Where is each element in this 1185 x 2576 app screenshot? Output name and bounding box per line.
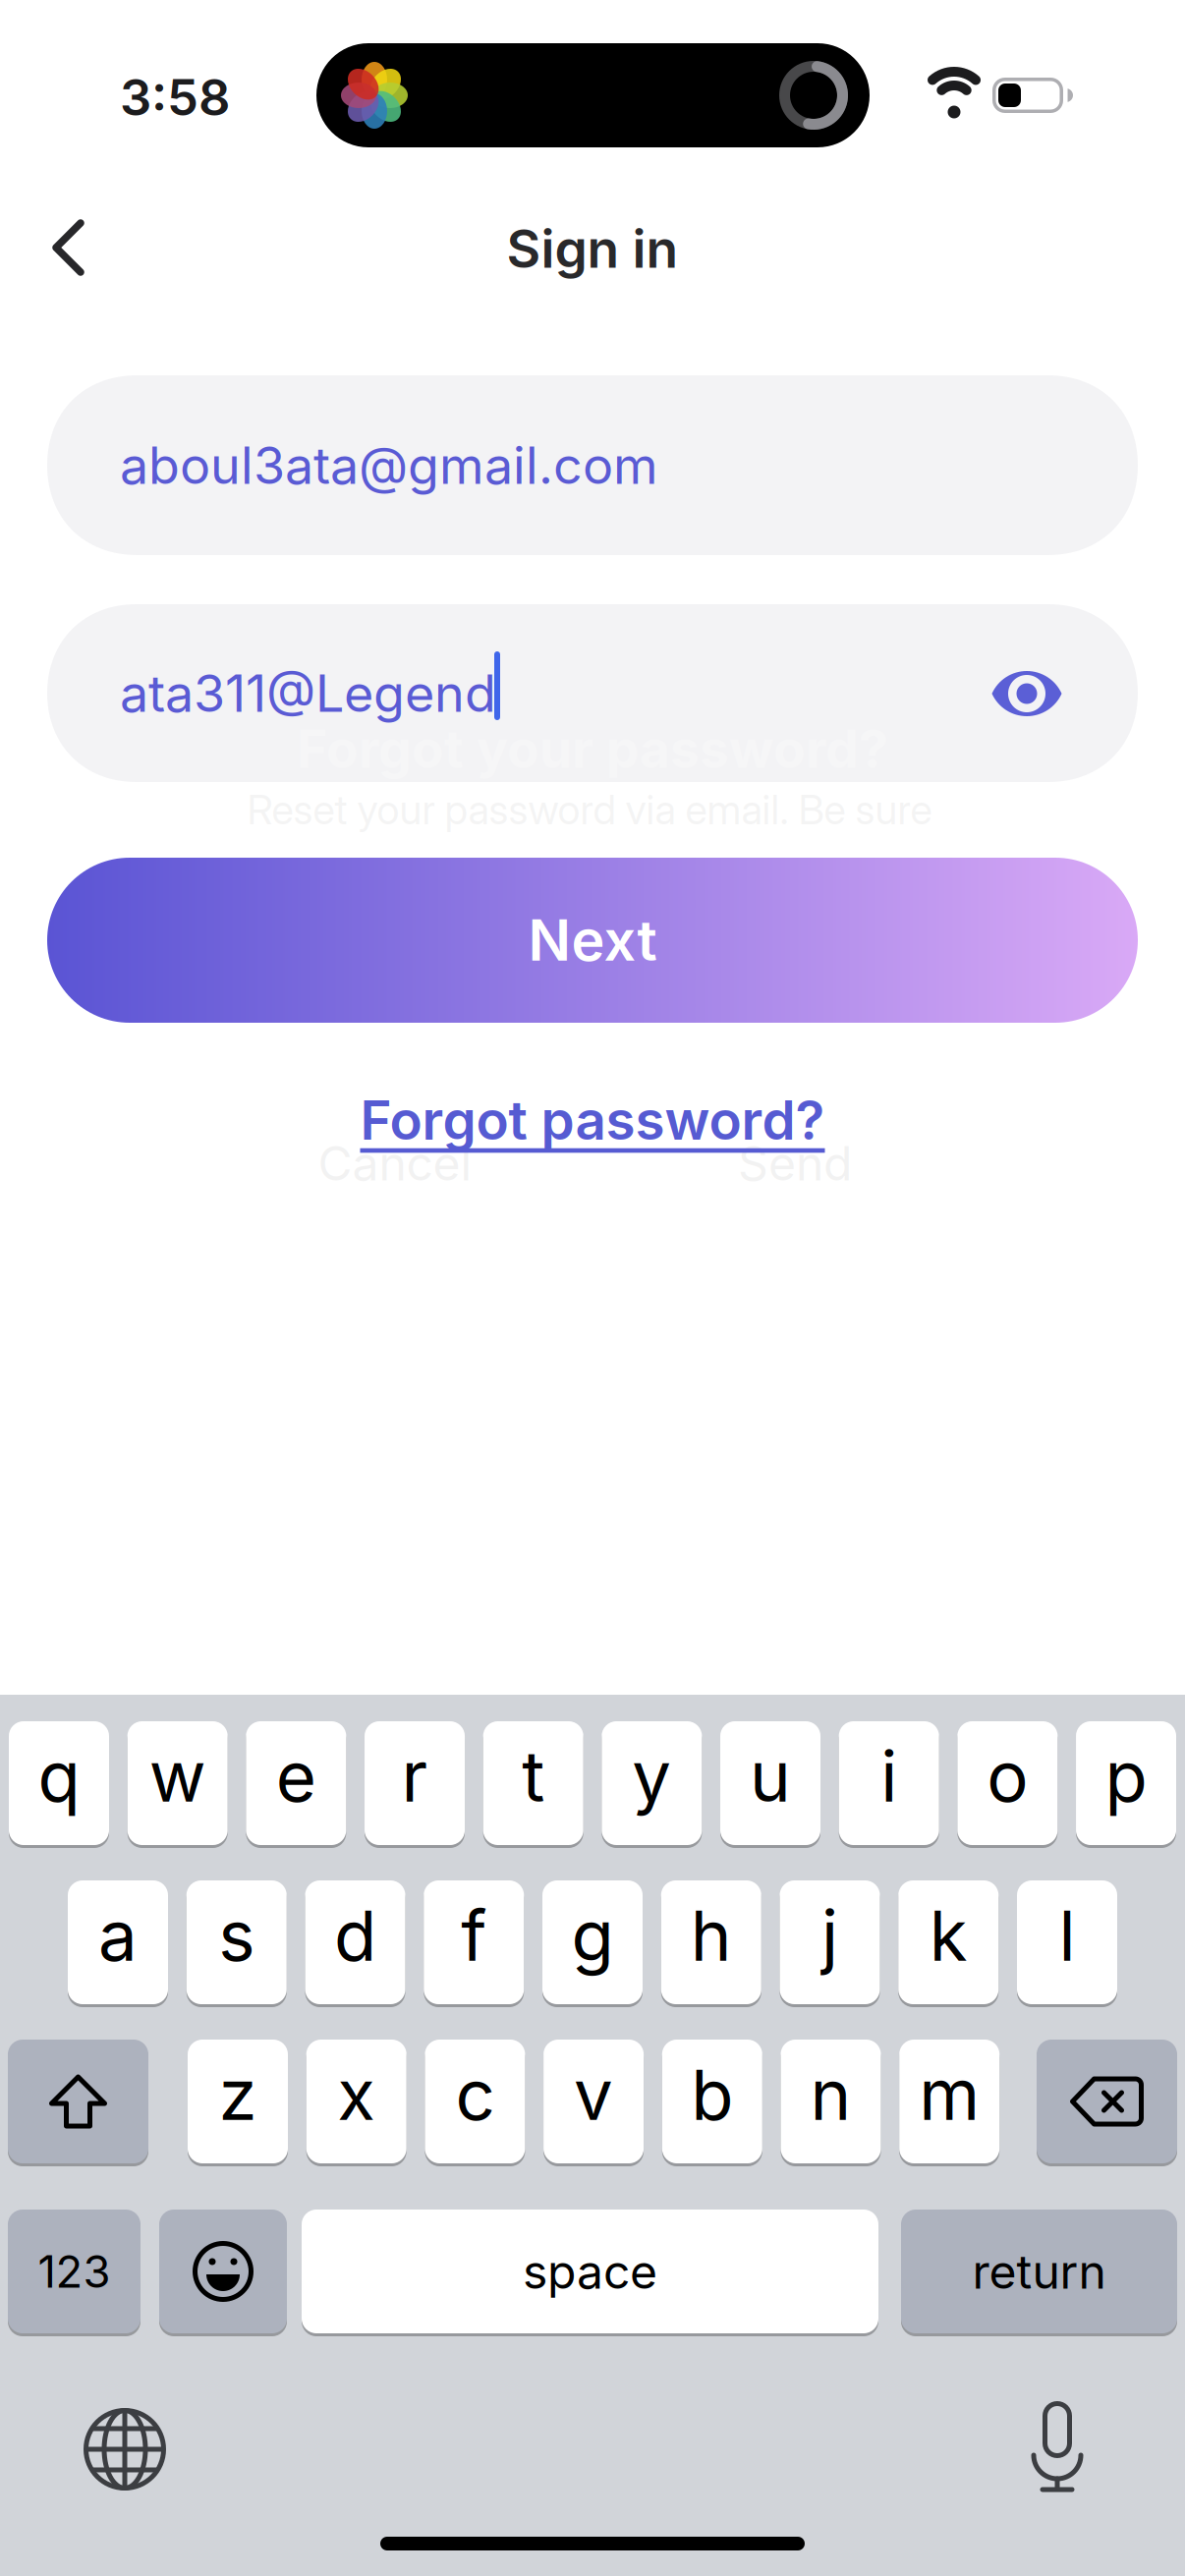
button[interactable]: b bbox=[662, 2038, 762, 2165]
button[interactable]: v bbox=[543, 2038, 644, 2165]
staticText: l bbox=[1059, 1894, 1075, 1976]
staticText: n bbox=[810, 2054, 851, 2136]
button[interactable]: Next bbox=[47, 858, 1138, 1023]
staticText: q bbox=[38, 1735, 80, 1817]
staticText: h bbox=[691, 1894, 732, 1976]
button[interactable]: space bbox=[302, 2208, 878, 2335]
staticText: s bbox=[218, 1894, 255, 1976]
staticText: c bbox=[455, 2054, 495, 2136]
staticText: t bbox=[522, 1735, 545, 1817]
staticText: Forgot password? bbox=[360, 1088, 825, 1152]
staticText: z bbox=[219, 2054, 257, 2136]
staticText: w bbox=[149, 1735, 206, 1817]
button[interactable]: w bbox=[127, 1720, 228, 1847]
staticText: b bbox=[691, 2054, 733, 2136]
staticText: g bbox=[571, 1894, 614, 1976]
button[interactable]: y bbox=[602, 1720, 702, 1847]
staticText: i bbox=[881, 1735, 897, 1817]
button[interactable]: Show password bbox=[987, 670, 1066, 717]
staticText: return bbox=[972, 2244, 1106, 2299]
button[interactable]: z bbox=[188, 2038, 288, 2165]
staticText: 123 bbox=[38, 2245, 111, 2298]
staticText: y bbox=[632, 1735, 671, 1817]
staticText: Sign in bbox=[507, 218, 678, 279]
button[interactable]: Dictation bbox=[1030, 2399, 1085, 2493]
staticText: 3:58 bbox=[120, 68, 230, 127]
button[interactable]: Switch keyboard bbox=[81, 2405, 169, 2493]
staticText: Forgot your password? bbox=[297, 718, 888, 779]
staticText: a bbox=[98, 1894, 138, 1976]
button[interactable]: p bbox=[1076, 1720, 1176, 1847]
staticText: Cancel bbox=[318, 1135, 472, 1191]
staticText: space bbox=[523, 2244, 657, 2299]
staticText: d bbox=[334, 1894, 376, 1976]
button[interactable]: t bbox=[483, 1720, 583, 1847]
button[interactable]: n bbox=[781, 2038, 881, 2165]
button[interactable]: e bbox=[246, 1720, 346, 1847]
button[interactable]: aboul3ata@gmail.com bbox=[47, 375, 1138, 555]
button[interactable]: r bbox=[365, 1720, 465, 1847]
staticText: v bbox=[574, 2054, 613, 2136]
button[interactable]: j bbox=[780, 1879, 880, 2006]
button[interactable]: d bbox=[305, 1879, 405, 2006]
button[interactable]: u bbox=[720, 1720, 820, 1847]
button[interactable]: x bbox=[306, 2038, 406, 2165]
button[interactable]: Emoji bbox=[159, 2208, 287, 2335]
button[interactable]: Forgot password? bbox=[360, 1088, 825, 1152]
button[interactable]: Numbers bbox=[8, 2208, 141, 2335]
staticText: x bbox=[337, 2054, 376, 2136]
staticText: Reset your password via email. Be sure bbox=[247, 786, 932, 834]
button[interactable]: m bbox=[899, 2038, 999, 2165]
staticText: Next bbox=[528, 907, 657, 973]
button[interactable]: h bbox=[661, 1879, 761, 2006]
button[interactable]: Delete bbox=[1037, 2038, 1177, 2165]
button[interactable]: q bbox=[9, 1720, 109, 1847]
button[interactable]: f bbox=[424, 1879, 524, 2006]
button[interactable]: o bbox=[957, 1720, 1058, 1847]
button[interactable]: Shift bbox=[8, 2038, 148, 2165]
staticText: k bbox=[929, 1894, 968, 1976]
button[interactable]: k bbox=[898, 1879, 999, 2006]
button[interactable]: l bbox=[1017, 1879, 1117, 2006]
button[interactable]: a bbox=[68, 1879, 168, 2006]
staticText: f bbox=[461, 1894, 487, 1976]
button[interactable]: i bbox=[839, 1720, 939, 1847]
staticText: ata311@Legend bbox=[120, 663, 496, 723]
staticText: p bbox=[1105, 1735, 1147, 1817]
button[interactable]: c bbox=[425, 2038, 525, 2165]
button[interactable]: return bbox=[901, 2208, 1177, 2335]
staticText: aboul3ata@gmail.com bbox=[120, 435, 658, 495]
staticText: r bbox=[401, 1735, 428, 1817]
staticText: j bbox=[821, 1894, 838, 1976]
staticText: u bbox=[750, 1735, 791, 1817]
staticText: m bbox=[919, 2054, 980, 2136]
button[interactable]: s bbox=[186, 1879, 287, 2006]
staticText: e bbox=[276, 1735, 316, 1817]
staticText: o bbox=[987, 1735, 1028, 1817]
button[interactable]: Back bbox=[52, 221, 107, 276]
button[interactable]: ata311@Legend bbox=[47, 604, 1138, 782]
button[interactable]: g bbox=[542, 1879, 643, 2006]
staticText: Send bbox=[738, 1135, 852, 1191]
